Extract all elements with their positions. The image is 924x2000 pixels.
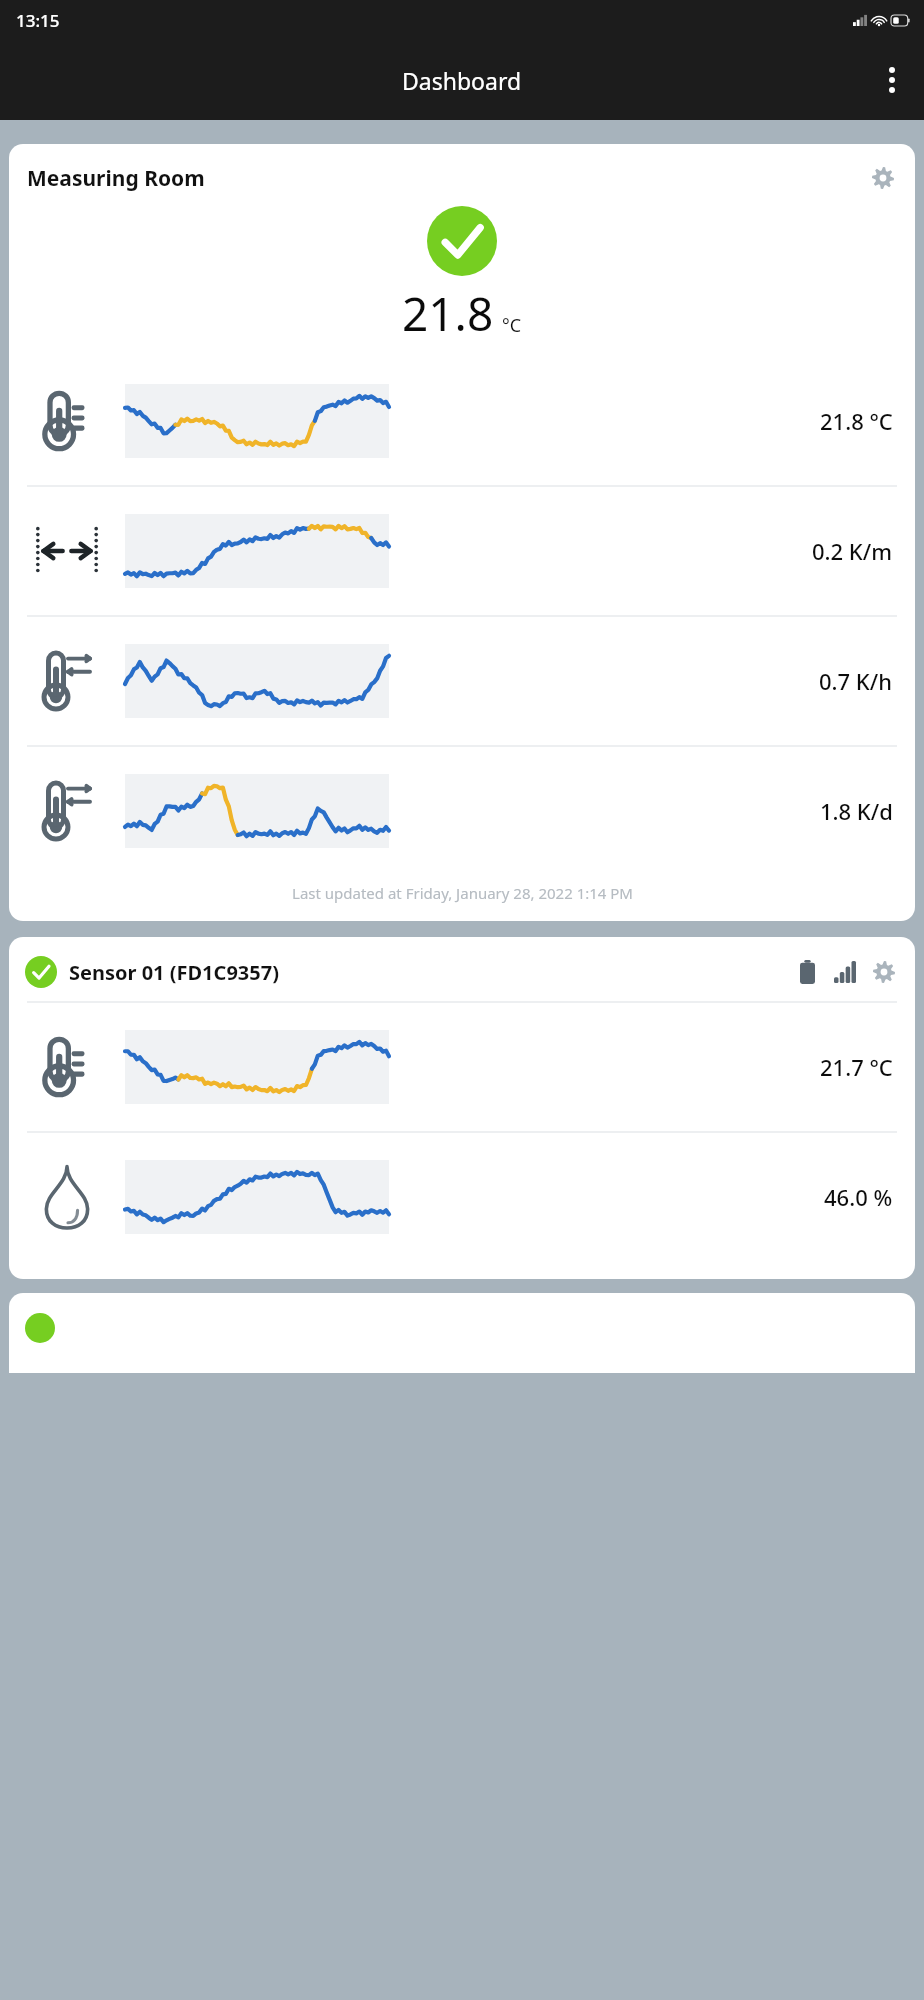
staticText: 1.8 K/d [820, 796, 893, 826]
button[interactable]: More options [868, 56, 916, 104]
staticText: Dashboard [402, 65, 522, 96]
staticText: 21.8 [402, 282, 494, 345]
button[interactable]: 21.7 °C [9, 1003, 915, 1131]
staticText: 21.7 °C [820, 1052, 893, 1082]
staticText: Sensor 01 (FD1C9357) [69, 959, 279, 986]
button[interactable]: 21.8 °C [9, 357, 915, 485]
button[interactable]: Battery [791, 956, 823, 988]
button[interactable]: 46.0 % [9, 1133, 915, 1261]
button[interactable]: 0.2 K/m [9, 487, 915, 615]
staticText: 0.2 K/m [812, 536, 893, 566]
button[interactable]: Signal strength [829, 956, 861, 988]
staticText: °C [502, 313, 522, 338]
button[interactable]: Settings [867, 955, 901, 989]
staticText: 46.0 % [824, 1182, 893, 1212]
staticText: Measuring Room [27, 164, 205, 193]
staticText: 21.8 °C [820, 406, 893, 436]
button[interactable]: 1.8 K/d [9, 747, 915, 875]
staticText: Last updated at Friday, January 28, 2022… [292, 883, 633, 903]
staticText: 13:15 [16, 9, 60, 32]
staticText: 0.7 K/h [819, 666, 893, 696]
button[interactable]: 0.7 K/h [9, 617, 915, 745]
button[interactable]: Settings [865, 160, 901, 196]
